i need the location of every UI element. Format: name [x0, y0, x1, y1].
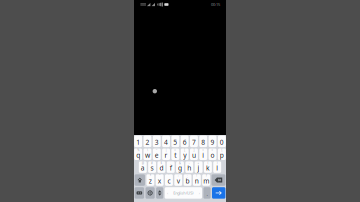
staticText: › [199, 190, 200, 196]
staticText: m [203, 176, 209, 185]
staticText: t [174, 151, 176, 160]
staticText: ( [207, 161, 208, 165]
button[interactable]: Delete [211, 174, 225, 186]
staticText: o [210, 151, 214, 160]
button[interactable]: ‹ [165, 187, 202, 199]
button[interactable]: # [148, 161, 156, 173]
staticText: y [183, 151, 186, 160]
staticText: j [198, 164, 200, 172]
staticText: # [151, 161, 153, 165]
button[interactable] [134, 136, 142, 147]
staticText: $ [160, 161, 162, 165]
button[interactable] [203, 187, 211, 199]
staticText: p [220, 151, 224, 160]
button[interactable]: [ [181, 148, 189, 160]
button[interactable]: @ [139, 161, 147, 173]
staticText: % [137, 148, 139, 152]
button[interactable]: ~ [153, 148, 161, 160]
button[interactable]: Shift [135, 174, 145, 186]
staticText: ~ [156, 148, 158, 152]
button[interactable]: < [199, 148, 207, 160]
button[interactable]: * [146, 174, 154, 186]
button[interactable] [143, 136, 151, 147]
staticText: ? [206, 174, 207, 178]
button[interactable]: ' [165, 174, 173, 186]
staticText: _ [170, 161, 171, 165]
button[interactable]: % [134, 148, 142, 160]
staticText: ! [196, 174, 197, 178]
button[interactable]: - [185, 161, 193, 173]
staticText: 0 [220, 138, 224, 147]
staticText: - [189, 161, 190, 165]
button[interactable]: + [195, 161, 202, 173]
button[interactable]: " [156, 174, 164, 186]
staticText: 5 [173, 138, 177, 147]
staticText: f [170, 164, 172, 172]
staticText: l [216, 164, 218, 172]
staticText: ' [168, 174, 169, 178]
staticText: n [195, 176, 199, 185]
staticText: English (US) [173, 190, 193, 196]
staticText: + [198, 161, 200, 165]
button[interactable]: ) [213, 161, 221, 173]
staticText: z [149, 176, 152, 185]
staticText: * [150, 174, 151, 178]
button[interactable] [190, 136, 198, 147]
button[interactable]: = [171, 148, 179, 160]
button[interactable]: > [209, 148, 216, 160]
button[interactable] [162, 136, 170, 147]
staticText: " [159, 174, 160, 178]
button[interactable]: $ [157, 161, 165, 173]
staticText: 1 [136, 138, 140, 147]
button[interactable]: Switch language [145, 187, 155, 199]
staticText: { [221, 148, 222, 152]
button[interactable] [181, 136, 189, 147]
button[interactable] [153, 136, 161, 147]
staticText: @ [142, 161, 144, 165]
button[interactable]: Return [212, 187, 225, 199]
button[interactable]: ! [193, 174, 201, 186]
staticText: 4 [164, 138, 168, 147]
staticText: ‹ [167, 190, 168, 196]
staticText: a [141, 164, 145, 172]
button[interactable]: \ [143, 148, 151, 160]
button[interactable]: & [176, 161, 184, 173]
staticText: . [206, 190, 207, 197]
button[interactable] [209, 136, 216, 147]
staticText: 2 [145, 138, 149, 147]
button[interactable]: _ [167, 161, 175, 173]
staticText: ; [187, 174, 188, 178]
staticText: \ [147, 148, 148, 152]
button[interactable] [218, 136, 226, 147]
button[interactable]: Symbols [135, 187, 144, 199]
staticText: = [174, 148, 176, 152]
staticText: 7 [192, 138, 196, 147]
staticText: [ [184, 148, 185, 152]
staticText: s [151, 164, 154, 172]
staticText: c [167, 176, 170, 185]
button[interactable]: { [218, 148, 226, 160]
staticText: 6 [183, 138, 187, 147]
button[interactable]: ; [184, 174, 191, 186]
staticText: 9 [210, 138, 214, 147]
staticText: w [145, 151, 150, 160]
button[interactable]: : [174, 174, 182, 186]
staticText: ) [217, 161, 218, 165]
staticText: : [178, 174, 179, 178]
staticText: 00:15 [211, 2, 220, 7]
staticText: d [159, 164, 163, 172]
button[interactable]: ] [190, 148, 198, 160]
staticText: v [177, 176, 180, 185]
staticText: r [164, 151, 167, 160]
staticText: i [202, 151, 204, 160]
staticText: q [136, 151, 140, 160]
button[interactable]: ( [204, 161, 212, 173]
button[interactable] [171, 136, 179, 147]
staticText: > [211, 148, 213, 152]
button[interactable]: Move cursor [156, 187, 163, 199]
button[interactable]: | [162, 148, 170, 160]
button[interactable]: ? [202, 174, 210, 186]
button[interactable] [199, 136, 207, 147]
staticText: g [178, 164, 182, 172]
staticText: ] [193, 148, 194, 152]
